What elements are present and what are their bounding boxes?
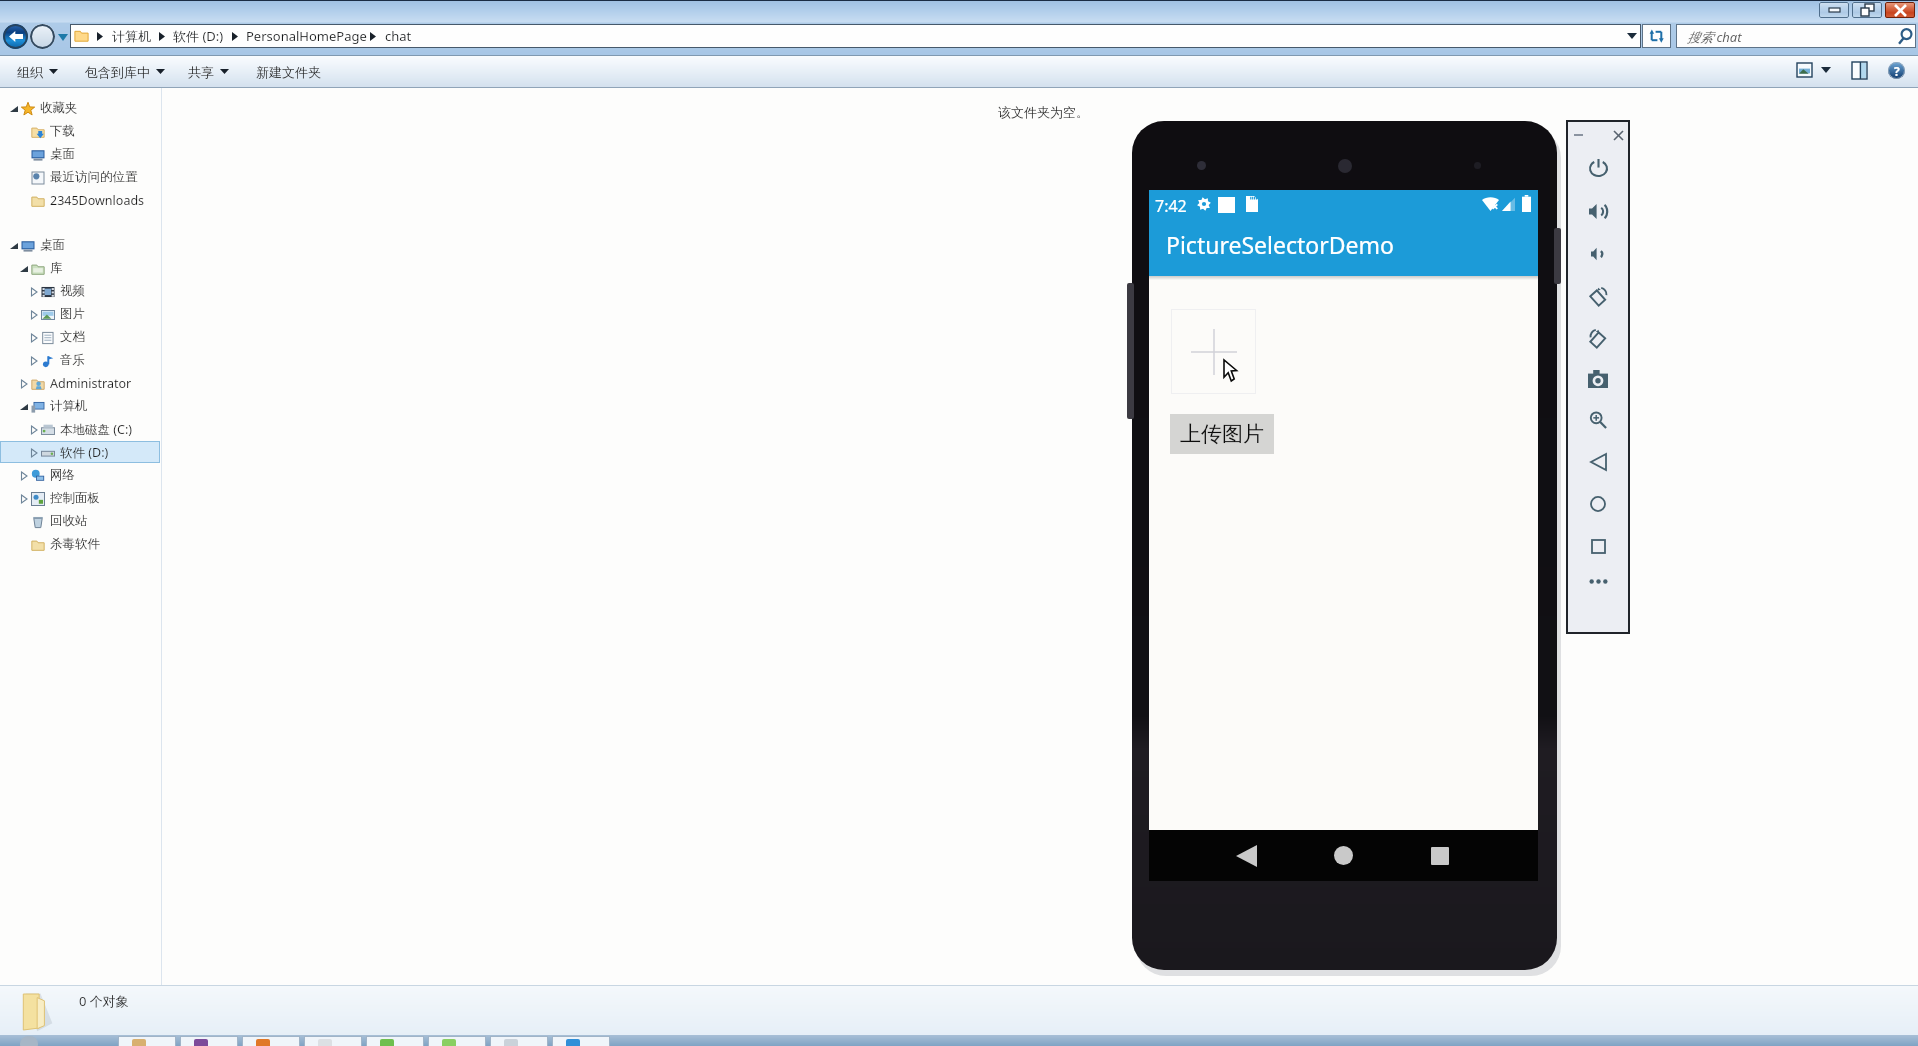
- staticText: 搜索 chat: [1687, 28, 1742, 46]
- staticText: 收藏夹: [40, 100, 78, 116]
- button[interactable]: More: [1583, 566, 1613, 596]
- button[interactable]: Add picture: [1171, 309, 1256, 394]
- staticText: 库: [50, 260, 63, 276]
- button[interactable]: Recent apps: [1416, 830, 1464, 881]
- button[interactable]: Screenshot: [1583, 364, 1613, 394]
- button[interactable]: Back: [3, 24, 28, 49]
- staticText: 计算机: [112, 28, 151, 44]
- staticText: 视频: [60, 283, 85, 299]
- button[interactable]: 软件 (D:): [173, 24, 224, 48]
- button[interactable]: Taskbar item: [552, 1036, 610, 1046]
- staticText: 组织: [17, 64, 43, 80]
- staticText: 包含到库中: [85, 64, 150, 80]
- button[interactable]: 最近访问的位置: [0, 166, 160, 188]
- button[interactable]: Close: [1885, 2, 1915, 18]
- button[interactable]: 杀毒软件: [0, 533, 160, 555]
- staticText: 软件 (D:): [173, 27, 224, 45]
- button[interactable]: Back: [1583, 447, 1613, 477]
- button[interactable]: 搜索 chat: [1676, 24, 1916, 48]
- button[interactable]: Home: [1583, 489, 1613, 519]
- button[interactable]: 图片: [0, 303, 160, 325]
- button[interactable]: Refresh: [1642, 24, 1671, 48]
- staticText: 本地磁盘 (C:): [60, 421, 133, 438]
- button[interactable]: 音乐: [0, 349, 160, 371]
- button[interactable]: 2345Downloads: [0, 189, 160, 211]
- button[interactable]: 文档: [0, 326, 160, 348]
- button[interactable]: Zoom: [1583, 405, 1613, 435]
- staticText: 文档: [60, 329, 85, 345]
- staticText: PersonalHomePage: [246, 27, 367, 45]
- button[interactable]: 本地磁盘 (C:): [0, 418, 160, 440]
- button[interactable]: 上传图片: [1170, 414, 1274, 454]
- staticText: 该文件夹为空。: [998, 104, 1089, 120]
- staticText: 上传图片: [1180, 421, 1264, 447]
- button[interactable]: chat: [385, 24, 412, 48]
- staticText: 音乐: [60, 352, 85, 368]
- button[interactable]: Forward: [30, 24, 55, 49]
- button[interactable]: Back: [1222, 830, 1270, 881]
- button[interactable]: 计算机: [112, 24, 151, 48]
- staticText: 杀毒软件: [50, 536, 100, 552]
- button[interactable]: 包含到库中: [81, 58, 169, 85]
- button[interactable]: Taskbar item: [366, 1036, 424, 1046]
- button[interactable]: Rotate right: [1583, 323, 1613, 353]
- button[interactable]: Show the preview pane: [1852, 62, 1867, 79]
- staticText: chat: [385, 27, 412, 45]
- staticText: 0 个对象: [79, 992, 129, 1010]
- button[interactable]: 控制面板: [0, 487, 160, 509]
- button[interactable]: Taskbar item: [304, 1036, 362, 1046]
- button[interactable]: 计算机: [0, 395, 160, 417]
- staticText: ?: [1894, 63, 1900, 79]
- button[interactable]: 回收站: [0, 510, 160, 532]
- staticText: 回收站: [50, 513, 88, 529]
- button[interactable]: Taskbar item: [118, 1036, 176, 1046]
- button[interactable]: Home: [1319, 830, 1367, 881]
- staticText: 桌面: [50, 146, 75, 162]
- staticText: 网络: [50, 467, 75, 483]
- button[interactable]: 新建文件夹: [252, 58, 325, 85]
- staticText: 最近访问的位置: [50, 169, 138, 185]
- button[interactable]: 桌面: [0, 143, 160, 165]
- button[interactable]: 收藏夹: [0, 97, 160, 119]
- button[interactable]: Administrator: [0, 372, 160, 394]
- button[interactable]: PersonalHomePage: [246, 24, 367, 48]
- button[interactable]: Volume up: [1583, 196, 1613, 226]
- button[interactable]: Taskbar item: [428, 1036, 486, 1046]
- button[interactable]: 共享: [184, 58, 233, 85]
- button[interactable]: Start: [20, 1036, 38, 1046]
- staticText: Administrator: [50, 375, 132, 392]
- staticText: 2345Downloads: [50, 192, 145, 209]
- button[interactable]: 组织: [13, 58, 62, 85]
- staticText: 计算机: [50, 398, 88, 414]
- button[interactable]: Minimize: [1819, 2, 1849, 18]
- button[interactable]: Taskbar item: [242, 1036, 300, 1046]
- button[interactable]: Taskbar item: [180, 1036, 238, 1046]
- staticText: PictureSelectorDemo: [1166, 229, 1394, 260]
- staticText: 控制面板: [50, 490, 100, 506]
- button[interactable]: Taskbar item: [490, 1036, 548, 1046]
- staticText: 下载: [50, 123, 75, 139]
- button[interactable]: 下载: [0, 120, 160, 142]
- button[interactable]: Change your view: [1797, 63, 1812, 77]
- button[interactable]: 桌面: [0, 234, 160, 256]
- staticText: 软件 (D:): [60, 444, 109, 461]
- staticText: 7:42: [1155, 195, 1187, 217]
- button[interactable]: Volume down: [1583, 239, 1613, 269]
- button[interactable]: Help: [1888, 62, 1905, 79]
- button[interactable]: Restore: [1852, 2, 1882, 18]
- staticText: 新建文件夹: [256, 64, 321, 80]
- staticText: 图片: [60, 306, 85, 322]
- button[interactable]: Overview: [1583, 531, 1613, 561]
- staticText: 共享: [188, 64, 214, 80]
- button[interactable]: 视频: [0, 280, 160, 302]
- button[interactable]: 软件 (D:): [0, 441, 160, 463]
- button[interactable]: 库: [0, 257, 160, 279]
- button[interactable]: Power: [1583, 153, 1613, 183]
- button[interactable]: Close: [1609, 126, 1627, 144]
- button[interactable]: 网络: [0, 464, 160, 486]
- button[interactable]: Rotate left: [1583, 281, 1613, 311]
- staticText: 桌面: [40, 237, 65, 253]
- button[interactable]: Minimize: [1569, 126, 1587, 144]
